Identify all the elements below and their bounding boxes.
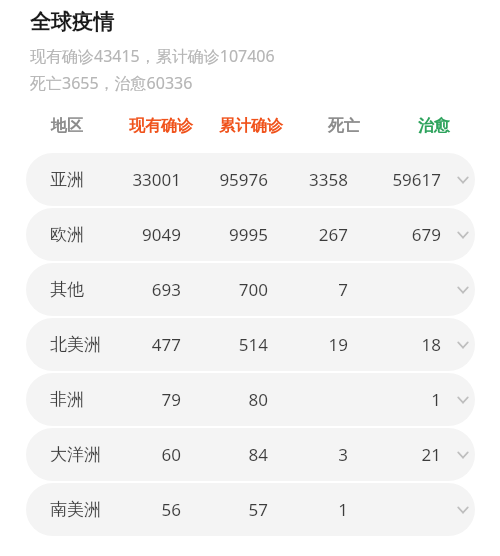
staticText: 3 bbox=[253, 443, 348, 466]
staticText: 亚洲 bbox=[50, 169, 84, 190]
staticText: 死亡 bbox=[322, 116, 366, 136]
staticText: 18 bbox=[346, 333, 441, 356]
button[interactable]: 非洲 bbox=[26, 373, 475, 426]
staticText: 60 bbox=[86, 443, 181, 466]
other: 展开 南美洲 bbox=[455, 502, 471, 518]
staticText: 59617 bbox=[346, 168, 441, 191]
staticText: 9995 bbox=[173, 223, 268, 246]
button[interactable]: 大洋洲 bbox=[26, 428, 475, 481]
staticText: 治愈 bbox=[412, 116, 456, 136]
staticText: 现有确诊43415，累计确诊107406 bbox=[30, 45, 275, 67]
staticText: 33001 bbox=[86, 168, 181, 191]
staticText: 21 bbox=[346, 443, 441, 466]
staticText: 693 bbox=[86, 278, 181, 301]
staticText: 514 bbox=[173, 333, 268, 356]
staticText: 56 bbox=[86, 498, 181, 521]
staticText: 57 bbox=[173, 498, 268, 521]
staticText: 非洲 bbox=[50, 389, 84, 410]
staticText: 7 bbox=[253, 278, 348, 301]
staticText: 1 bbox=[253, 498, 348, 521]
button[interactable]: 南美洲 bbox=[26, 483, 475, 536]
staticText: 80 bbox=[173, 388, 268, 411]
staticText: 700 bbox=[173, 278, 268, 301]
other: 展开 非洲 bbox=[455, 392, 471, 408]
staticText: 1 bbox=[346, 388, 441, 411]
staticText: 3358 bbox=[253, 168, 348, 191]
staticText: 大洋洲 bbox=[50, 444, 101, 465]
staticText: 79 bbox=[86, 388, 181, 411]
staticText: 南美洲 bbox=[50, 499, 101, 520]
button[interactable]: 北美洲 bbox=[26, 318, 475, 371]
staticText: 累计确诊 bbox=[209, 116, 293, 136]
staticText: 欧洲 bbox=[50, 224, 84, 245]
button[interactable]: 其他 bbox=[26, 263, 475, 316]
other: 展开 大洋洲 bbox=[455, 447, 471, 463]
staticText: 477 bbox=[86, 333, 181, 356]
staticText: 现有确诊 bbox=[119, 116, 203, 136]
staticText: 9049 bbox=[86, 223, 181, 246]
button[interactable]: 亚洲 bbox=[26, 153, 475, 206]
button[interactable]: 欧洲 bbox=[26, 208, 475, 261]
staticText: 267 bbox=[253, 223, 348, 246]
staticText: 死亡3655，治愈60336 bbox=[30, 72, 193, 94]
staticText: 84 bbox=[173, 443, 268, 466]
staticText: 19 bbox=[253, 333, 348, 356]
staticText: 全球疫情 bbox=[30, 9, 114, 35]
staticText: 北美洲 bbox=[50, 334, 101, 355]
staticText: 地区 bbox=[45, 116, 89, 136]
other: 展开 北美洲 bbox=[455, 337, 471, 353]
other: 展开 欧洲 bbox=[455, 227, 471, 243]
staticText: 95976 bbox=[173, 168, 268, 191]
other: 展开 其他 bbox=[455, 282, 471, 298]
staticText: 其他 bbox=[50, 279, 84, 300]
staticText: 679 bbox=[346, 223, 441, 246]
other: 展开 亚洲 bbox=[455, 172, 471, 188]
